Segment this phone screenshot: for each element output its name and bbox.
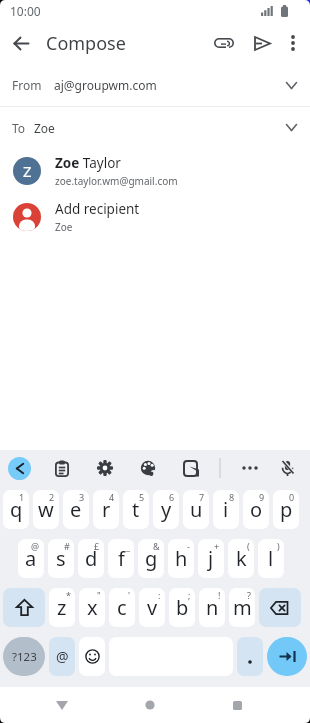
staticText: u	[190, 496, 203, 523]
button[interactable]: r	[93, 490, 119, 529]
staticText: r	[102, 496, 111, 523]
staticText: q	[10, 496, 23, 523]
button[interactable]	[94, 457, 116, 479]
button[interactable]: p	[273, 490, 299, 529]
button[interactable]: @	[49, 637, 75, 676]
button[interactable]: v	[139, 588, 165, 627]
staticText: @	[31, 540, 40, 552]
staticText: #	[64, 540, 70, 552]
button[interactable]: To	[0, 107, 310, 148]
staticText: c	[117, 594, 127, 621]
staticText: b	[176, 594, 189, 621]
button[interactable]	[276, 457, 298, 479]
button[interactable]: From	[0, 64, 310, 106]
staticText: Zoe Taylor	[55, 154, 121, 172]
staticText: Z	[23, 161, 32, 181]
staticText: x	[87, 594, 98, 621]
staticText: Zoe	[55, 220, 73, 234]
button[interactable]: y	[153, 490, 179, 529]
button[interactable]	[135, 694, 165, 716]
button[interactable]: g	[138, 539, 164, 578]
button[interactable]: k	[228, 539, 254, 578]
staticText: z	[57, 594, 67, 621]
staticText: £	[94, 540, 100, 552]
staticText: From	[12, 77, 42, 93]
button[interactable]: s	[48, 539, 74, 578]
staticText: "	[97, 589, 101, 601]
staticText: a	[25, 545, 37, 572]
staticText: i	[223, 496, 229, 523]
staticText: ?123	[12, 649, 37, 665]
button[interactable]: m	[229, 588, 255, 627]
button[interactable]: c	[109, 588, 135, 627]
staticText: @	[56, 647, 69, 666]
staticText: &	[153, 540, 160, 552]
staticText: y	[161, 496, 172, 523]
button[interactable]: d	[78, 539, 104, 578]
staticText: aj@groupwm.com	[54, 77, 157, 93]
button[interactable]: x	[79, 588, 105, 627]
staticText: Zoe	[34, 120, 55, 136]
staticText: v	[147, 594, 158, 621]
staticText: d	[85, 545, 98, 572]
button[interactable]: w	[33, 490, 59, 529]
button[interactable]: b	[169, 588, 195, 627]
button[interactable]: z	[49, 588, 75, 627]
staticText: l	[268, 545, 274, 572]
button[interactable]: e	[63, 490, 89, 529]
button[interactable]	[51, 457, 73, 479]
button[interactable]: n	[199, 588, 225, 627]
staticText: p	[280, 496, 293, 523]
button[interactable]: f	[108, 539, 134, 578]
button[interactable]	[222, 694, 252, 716]
staticText: e	[70, 496, 82, 523]
staticText: Compose	[46, 31, 126, 56]
staticText: k	[236, 545, 247, 572]
staticText: +	[214, 540, 220, 552]
staticText: ?	[247, 589, 251, 601]
button[interactable]: h	[168, 539, 194, 578]
staticText: 10:00	[10, 3, 41, 19]
staticText: 5	[139, 491, 145, 503]
staticText: '	[128, 589, 131, 601]
staticText: o	[250, 496, 263, 523]
staticText: 2	[49, 491, 55, 503]
staticText: *	[66, 589, 71, 601]
button[interactable]: u	[183, 490, 209, 529]
button[interactable]: Add recipient	[0, 194, 310, 240]
button[interactable]	[259, 588, 301, 627]
button[interactable]	[0, 22, 42, 64]
staticText: m	[233, 594, 252, 621]
button[interactable]: q	[3, 490, 29, 529]
staticText: _	[126, 540, 130, 552]
button[interactable]: l	[258, 539, 284, 578]
button[interactable]	[3, 588, 45, 627]
button[interactable]	[79, 637, 105, 676]
staticText: s	[56, 545, 66, 572]
button[interactable]: j	[198, 539, 224, 578]
staticText: )	[277, 540, 280, 552]
button[interactable]	[137, 457, 159, 479]
button[interactable]: Z	[0, 148, 310, 194]
button[interactable]	[47, 694, 77, 716]
button[interactable]: i	[213, 490, 239, 529]
button[interactable]	[237, 637, 263, 676]
button[interactable]: a	[18, 539, 44, 578]
staticText: Add recipient	[55, 200, 140, 218]
staticText: 6	[169, 491, 175, 503]
button[interactable]: ?123	[3, 637, 45, 676]
button[interactable]	[180, 457, 202, 479]
staticText: 8	[229, 491, 235, 503]
button[interactable]: o	[243, 490, 269, 529]
button[interactable]	[239, 457, 261, 479]
staticText: g	[145, 545, 158, 572]
button[interactable]	[281, 22, 305, 64]
button[interactable]	[205, 22, 243, 64]
staticText: n	[206, 594, 219, 621]
button[interactable]	[267, 637, 307, 676]
staticText: 4	[109, 491, 115, 503]
button[interactable]	[243, 22, 281, 64]
button[interactable]: t	[123, 490, 149, 529]
button[interactable]	[8, 457, 31, 480]
